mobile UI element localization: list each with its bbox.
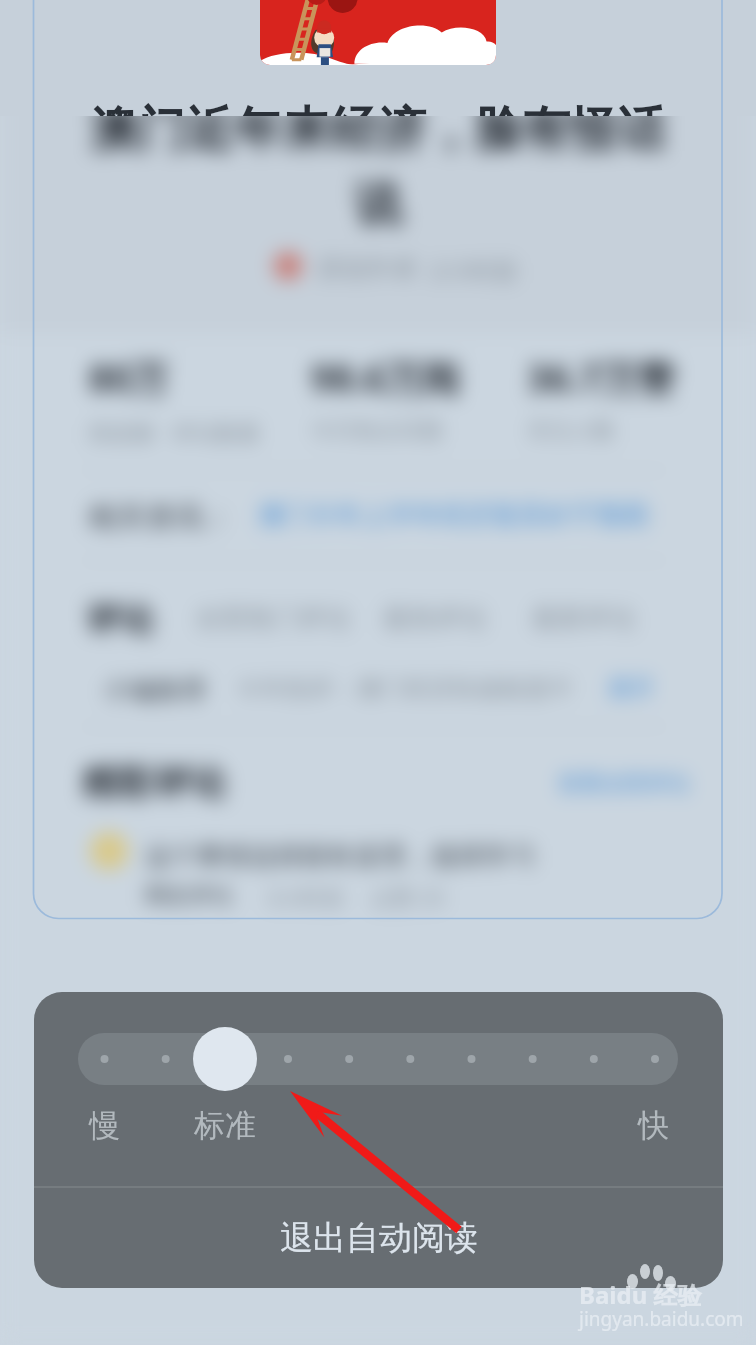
- button[interactable]: Reading speed: [193, 1027, 257, 1091]
- staticText: 80万: [89, 352, 169, 403]
- staticText: 标准: [194, 1106, 256, 1145]
- staticText: 最热评论: [383, 602, 487, 635]
- staticText: 这个事情说得很有道理，值得学习: [145, 840, 535, 873]
- staticText: 展开: [608, 674, 654, 703]
- staticText: 查看全部评论: [558, 770, 690, 798]
- staticText: 澳门近年来经济，脸有怪话说: [70, 100, 686, 116]
- staticText: 澳门近年来经济，脸有怪话说: [70, 100, 686, 235]
- staticText: jingyan.baidu.com: [579, 1306, 744, 1332]
- staticText: 98.6万阅: [311, 352, 459, 403]
- staticText: 快: [638, 1106, 669, 1145]
- staticText: 最新评论: [532, 602, 636, 635]
- staticText: 36.7万赞: [527, 352, 675, 403]
- staticText: 阅读量 · 评论数量: [89, 417, 261, 447]
- button[interactable]: 退出自动阅读: [34, 1188, 723, 1288]
- button[interactable]: 澳门今年上半年经济复苏好于预期: [258, 499, 648, 532]
- staticText: 评论: [86, 598, 154, 641]
- staticText: 2小时前: [429, 253, 519, 287]
- staticText: 澳门今年上半年经济复苏好于预期: [258, 499, 648, 532]
- staticText: 精彩评论: [82, 760, 226, 805]
- staticText: 小编推荐: [103, 674, 207, 707]
- staticText: 相关资讯：: [88, 499, 233, 536]
- staticText: 退出自动阅读: [280, 1217, 478, 1259]
- staticText: 慢: [89, 1106, 120, 1145]
- staticText: Baidu 经验: [579, 1278, 702, 1311]
- staticText: 网友评论: [145, 882, 233, 910]
- staticText: 今年热评：澳门经济快速恢复中: [237, 674, 573, 704]
- staticText: 全部热门评论: [195, 602, 351, 635]
- button[interactable]: Reading speed slider: [78, 1033, 678, 1085]
